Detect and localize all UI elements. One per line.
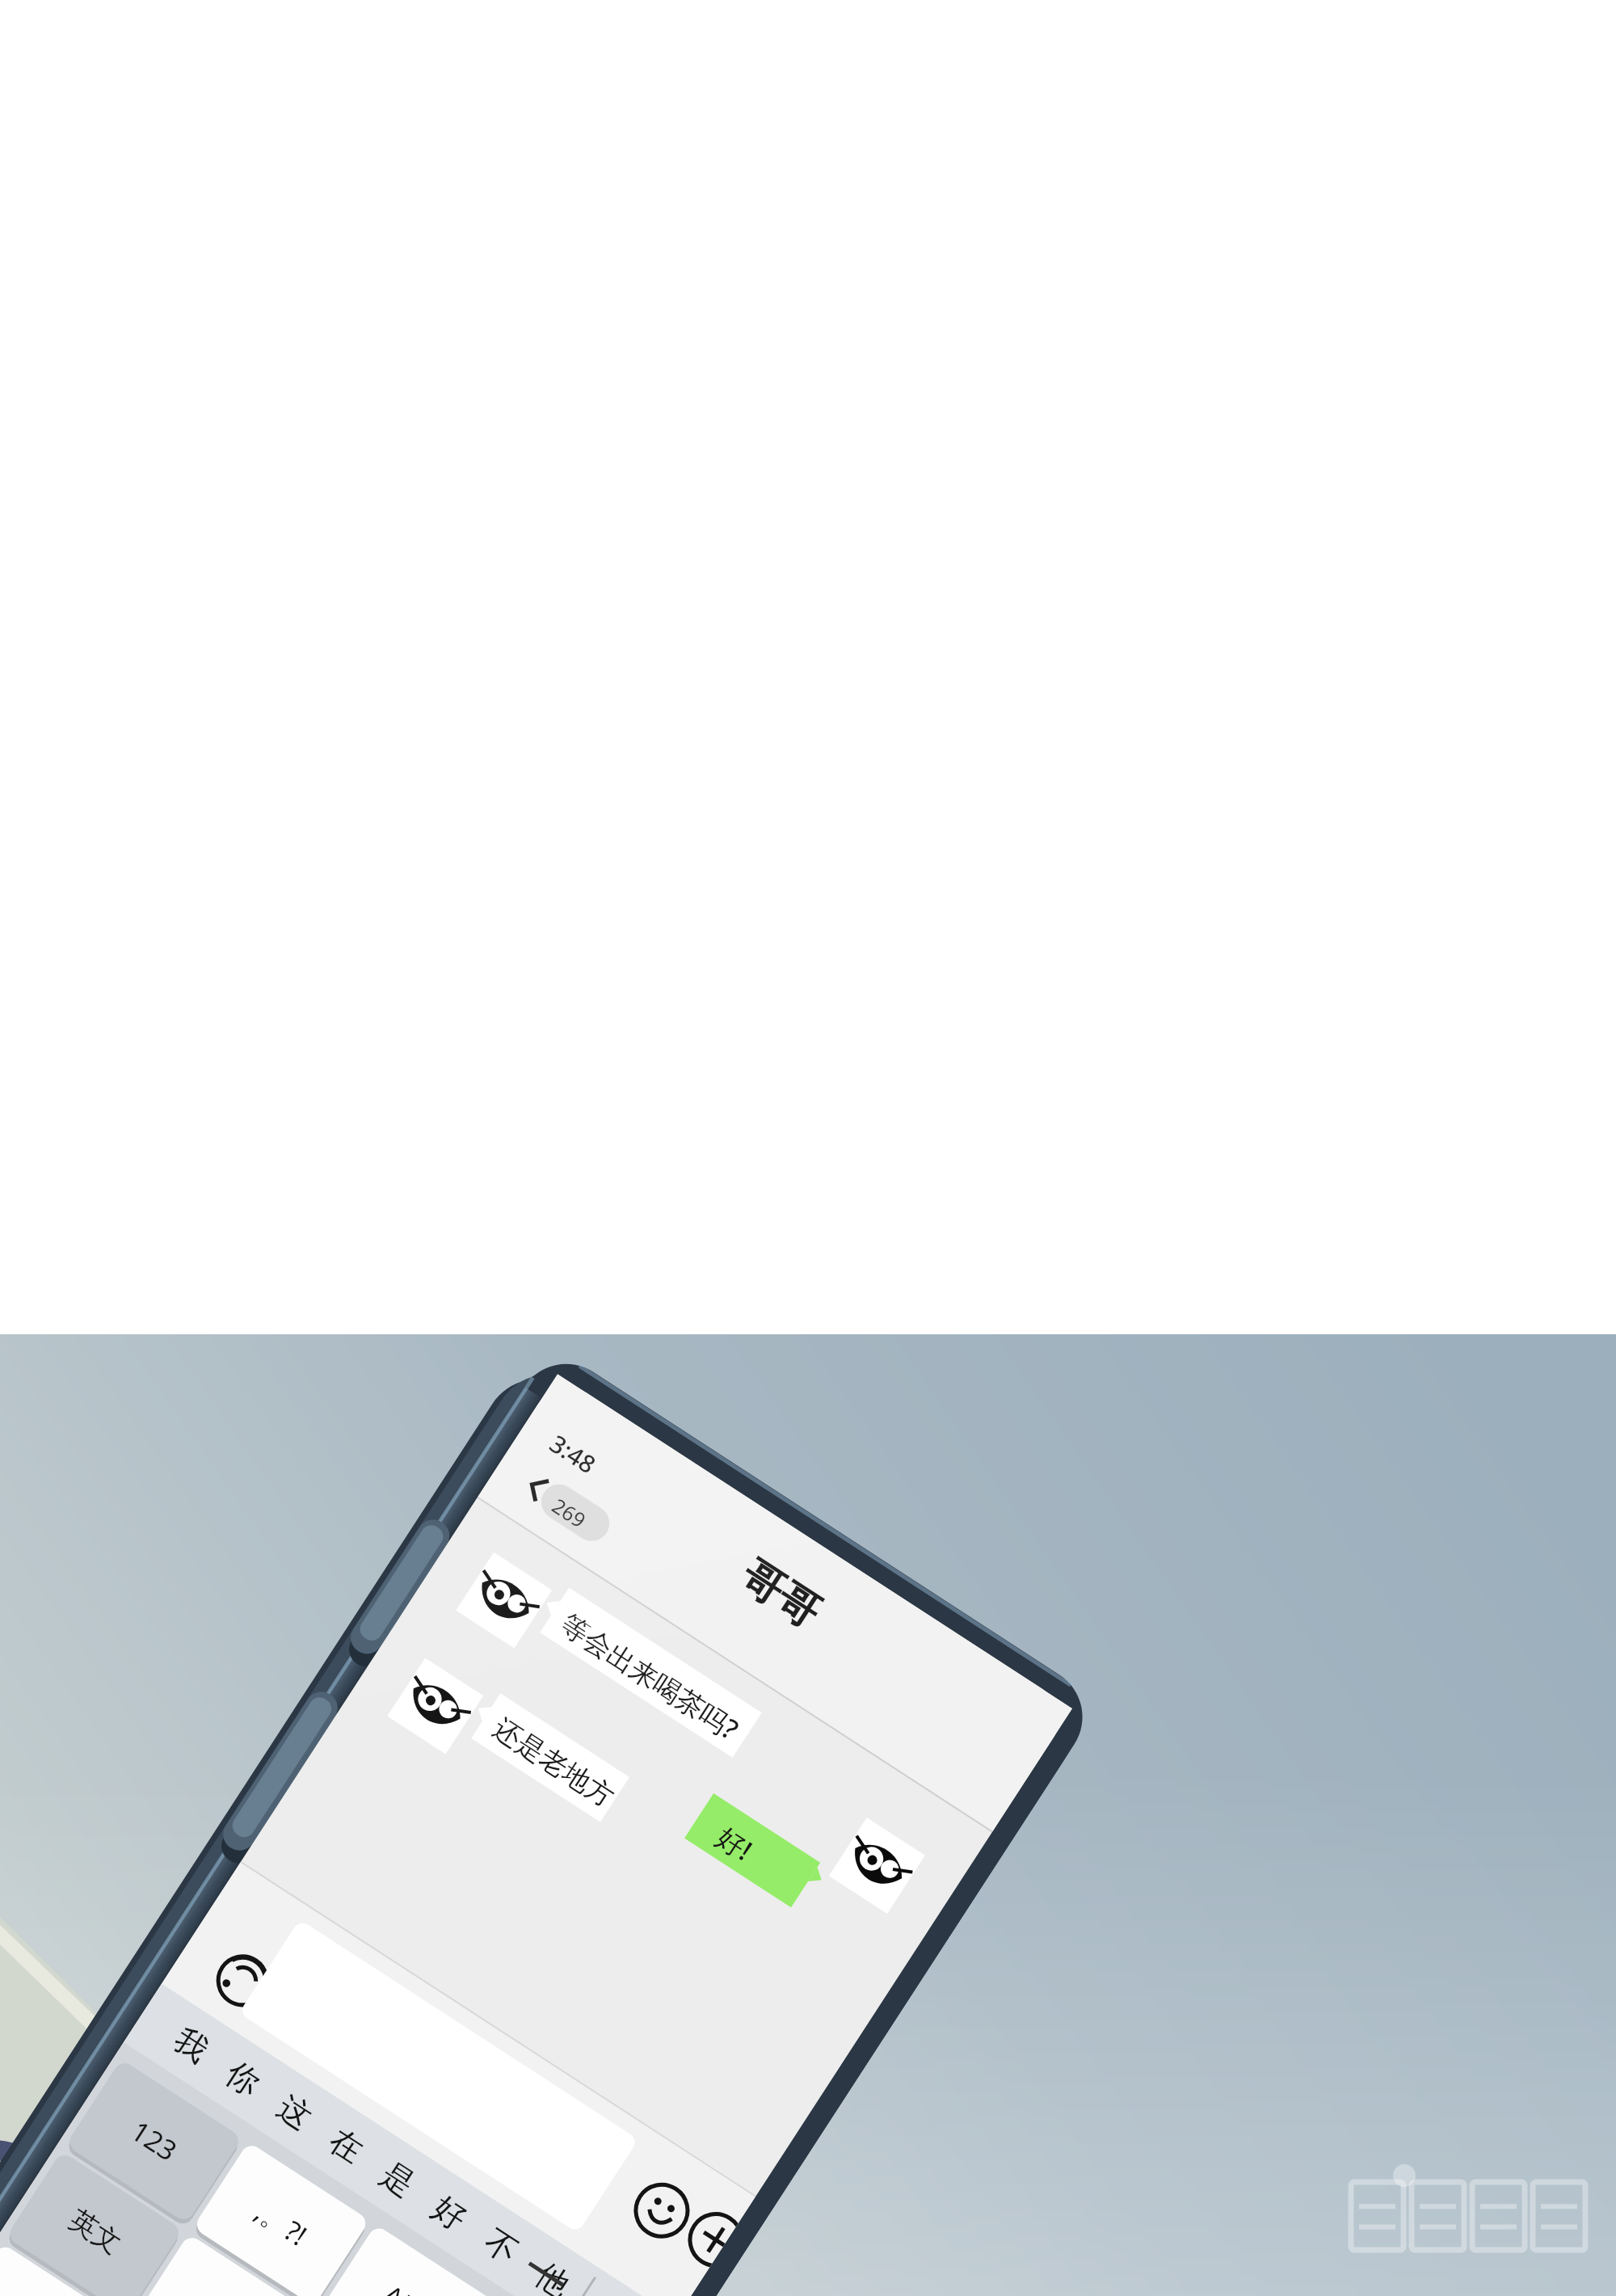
button[interactable]: Comic panel: phone chat with 哥哥 <box>0 0 1616 2296</box>
